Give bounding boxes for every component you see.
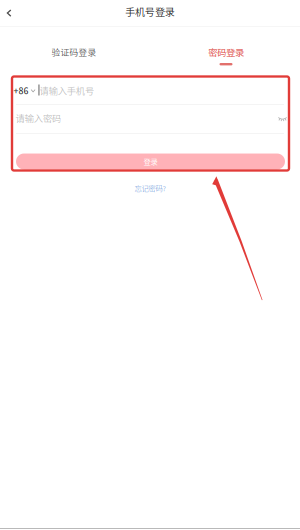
button[interactable]: Show password bbox=[271, 109, 293, 129]
staticText: 忘记密码? bbox=[134, 183, 165, 193]
staticText: +86 bbox=[13, 84, 28, 97]
button[interactable]: 忘记密码? bbox=[120, 182, 180, 194]
staticText: 请输入手机号 bbox=[40, 84, 94, 97]
staticText: 手机号登录 bbox=[125, 4, 175, 19]
button[interactable]: Back bbox=[0, 0, 24, 26]
button[interactable]: 登录 bbox=[16, 153, 285, 169]
button[interactable]: 验证码登录 bbox=[41, 39, 107, 65]
staticText: 请输入密码 bbox=[16, 111, 61, 125]
staticText: 登录 bbox=[143, 156, 157, 167]
staticText: 密码登录 bbox=[208, 45, 244, 59]
button[interactable]: 密码登录 bbox=[195, 39, 257, 65]
staticText: 验证码登录 bbox=[51, 46, 96, 58]
